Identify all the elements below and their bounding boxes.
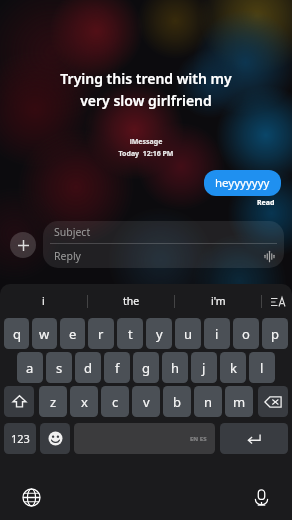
- staticText: j: [202, 359, 206, 377]
- button[interactable]: Return: [220, 423, 288, 454]
- staticText: i: [215, 325, 219, 343]
- button[interactable]: g: [133, 352, 159, 383]
- button[interactable]: k: [220, 352, 246, 383]
- button[interactable]: Text formatting: [262, 284, 292, 318]
- staticText: Subject: [54, 225, 91, 239]
- staticText: a: [26, 359, 34, 377]
- button[interactable]: Add attachment: [10, 232, 36, 258]
- button[interactable]: t: [117, 318, 143, 349]
- staticText: Today 12:16 PM: [0, 149, 292, 159]
- staticText: r: [98, 325, 104, 343]
- button[interactable]: Subject: [43, 221, 284, 268]
- staticText: l: [260, 359, 264, 377]
- staticText: i'm: [211, 294, 226, 308]
- button[interactable]: f: [104, 352, 130, 383]
- button[interactable]: a: [17, 352, 43, 383]
- staticText: g: [142, 359, 150, 377]
- staticText: 123: [11, 431, 30, 446]
- button[interactable]: o: [233, 318, 259, 349]
- button[interactable]: i'm: [175, 284, 261, 318]
- staticText: n: [204, 393, 213, 411]
- button[interactable]: s: [46, 352, 72, 383]
- button[interactable]: i: [0, 284, 87, 318]
- button[interactable]: u: [175, 318, 201, 349]
- button[interactable]: m: [225, 386, 253, 417]
- button[interactable]: v: [132, 386, 160, 417]
- button[interactable]: q: [4, 318, 29, 349]
- button[interactable]: c: [101, 386, 129, 417]
- staticText: heyyyyyyy: [215, 175, 270, 191]
- staticText: w: [39, 325, 50, 343]
- button[interactable]: p: [262, 318, 288, 349]
- button[interactable]: h: [162, 352, 188, 383]
- button[interactable]: e: [60, 318, 85, 349]
- staticText: o: [242, 325, 250, 343]
- button[interactable]: EN ES: [74, 423, 215, 454]
- staticText: v: [143, 393, 150, 411]
- button[interactable]: Shift: [4, 386, 34, 417]
- staticText: p: [271, 325, 279, 343]
- staticText: e: [69, 325, 77, 343]
- button[interactable]: Backspace: [258, 386, 288, 417]
- button[interactable]: l: [249, 352, 275, 383]
- button[interactable]: Change keyboard language: [18, 484, 44, 510]
- staticText: z: [50, 393, 57, 411]
- button[interactable]: 123: [4, 423, 36, 454]
- staticText: i: [42, 294, 45, 308]
- button[interactable]: r: [88, 318, 114, 349]
- button[interactable]: i: [204, 318, 230, 349]
- staticText: s: [56, 359, 63, 377]
- staticText: Reply: [54, 249, 81, 263]
- staticText: Read: [257, 198, 275, 208]
- staticText: iMessage: [0, 137, 292, 147]
- staticText: very slow girlfriend: [0, 91, 292, 110]
- button[interactable]: w: [32, 318, 57, 349]
- staticText: k: [230, 359, 237, 377]
- button[interactable]: y: [146, 318, 172, 349]
- staticText: the: [123, 294, 140, 308]
- button[interactable]: d: [75, 352, 101, 383]
- button[interactable]: j: [191, 352, 217, 383]
- button[interactable]: Emoji: [40, 423, 70, 454]
- button[interactable]: x: [70, 386, 98, 417]
- staticText: x: [81, 393, 88, 411]
- button[interactable]: Record audio message: [262, 249, 276, 263]
- staticText: d: [84, 359, 92, 377]
- staticText: u: [184, 325, 193, 343]
- staticText: Trying this trend with my: [0, 69, 292, 88]
- staticText: c: [112, 393, 119, 411]
- staticText: EN ES: [190, 435, 207, 443]
- staticText: y: [156, 325, 163, 343]
- button[interactable]: Dictation: [248, 484, 274, 510]
- staticText: b: [173, 393, 181, 411]
- staticText: m: [233, 393, 246, 411]
- staticText: f: [115, 359, 120, 377]
- button[interactable]: z: [39, 386, 67, 417]
- button[interactable]: b: [163, 386, 191, 417]
- staticText: t: [128, 325, 133, 343]
- button[interactable]: heyyyyyyy: [204, 170, 281, 196]
- button[interactable]: n: [194, 386, 222, 417]
- button[interactable]: the: [88, 284, 174, 318]
- staticText: h: [171, 359, 180, 377]
- staticText: q: [13, 325, 21, 343]
